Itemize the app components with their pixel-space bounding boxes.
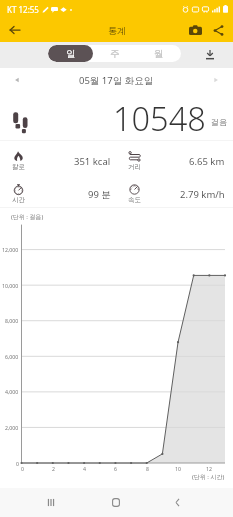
staticText: 통계	[108, 25, 126, 36]
staticText: (단위 : 시간)	[192, 473, 225, 481]
button[interactable]: Recents	[38, 488, 64, 517]
staticText: (단위 : 걸음)	[11, 213, 44, 221]
staticText: 칼로	[12, 163, 25, 171]
staticText: 10,000	[2, 282, 19, 289]
staticText: 6,000	[5, 353, 19, 360]
staticText: 4,000	[5, 388, 19, 395]
button[interactable]: Camera	[184, 18, 206, 42]
button[interactable]: Download	[200, 44, 220, 64]
button[interactable]: Back	[164, 488, 190, 517]
staticText: 월	[154, 48, 164, 60]
button[interactable]: Previous day	[9, 72, 25, 88]
staticText: 10	[175, 465, 181, 472]
staticText: 2,000	[5, 424, 19, 431]
button[interactable]: Next day	[208, 72, 224, 88]
staticText: 주	[110, 48, 120, 60]
staticText: 12,000	[2, 246, 19, 253]
staticText: 0	[21, 465, 24, 472]
staticText: 0	[16, 460, 19, 467]
staticText: 2.79 km/h	[180, 188, 225, 201]
staticText: KT 12:55	[7, 4, 39, 15]
button[interactable]: Back	[4, 19, 26, 41]
staticText: 8,000	[5, 317, 19, 324]
button[interactable]: 속도	[116, 174, 233, 207]
button[interactable]: 주	[93, 45, 137, 62]
staticText: 4	[83, 465, 86, 472]
staticText: 속도	[128, 196, 141, 204]
button[interactable]: 거리	[116, 141, 233, 174]
staticText: 12	[206, 465, 212, 472]
button[interactable]: 월	[137, 45, 181, 62]
staticText: 351 kcal	[74, 155, 111, 168]
staticText: 일	[66, 48, 76, 60]
button[interactable]: Home	[103, 488, 129, 517]
staticText: 05월 17일 화요일	[79, 74, 154, 87]
staticText: 걸음	[211, 117, 227, 127]
staticText: 10548	[113, 96, 206, 140]
staticText: 8	[146, 465, 149, 472]
staticText: 6.65 km	[189, 155, 225, 168]
staticText: 2	[52, 465, 55, 472]
staticText: 시간	[12, 196, 25, 204]
staticText: 99 분	[88, 188, 111, 201]
staticText: 6	[114, 465, 117, 472]
button[interactable]: Share	[207, 18, 229, 42]
button[interactable]: 일	[48, 45, 93, 62]
staticText: 거리	[128, 163, 141, 171]
button[interactable]: 시간	[0, 174, 116, 207]
button[interactable]: 칼로	[0, 141, 116, 174]
